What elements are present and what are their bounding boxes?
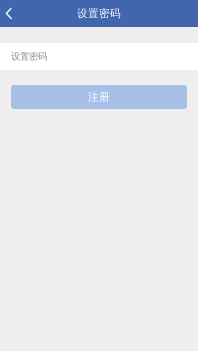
staticText: 注册 — [88, 90, 110, 103]
button[interactable]: Back — [0, 0, 18, 27]
button[interactable]: 设置密码 — [0, 43, 198, 70]
button[interactable]: 注册 — [11, 85, 187, 109]
staticText: 设置密码 — [77, 7, 121, 20]
staticText: 设置密码 — [11, 51, 47, 62]
